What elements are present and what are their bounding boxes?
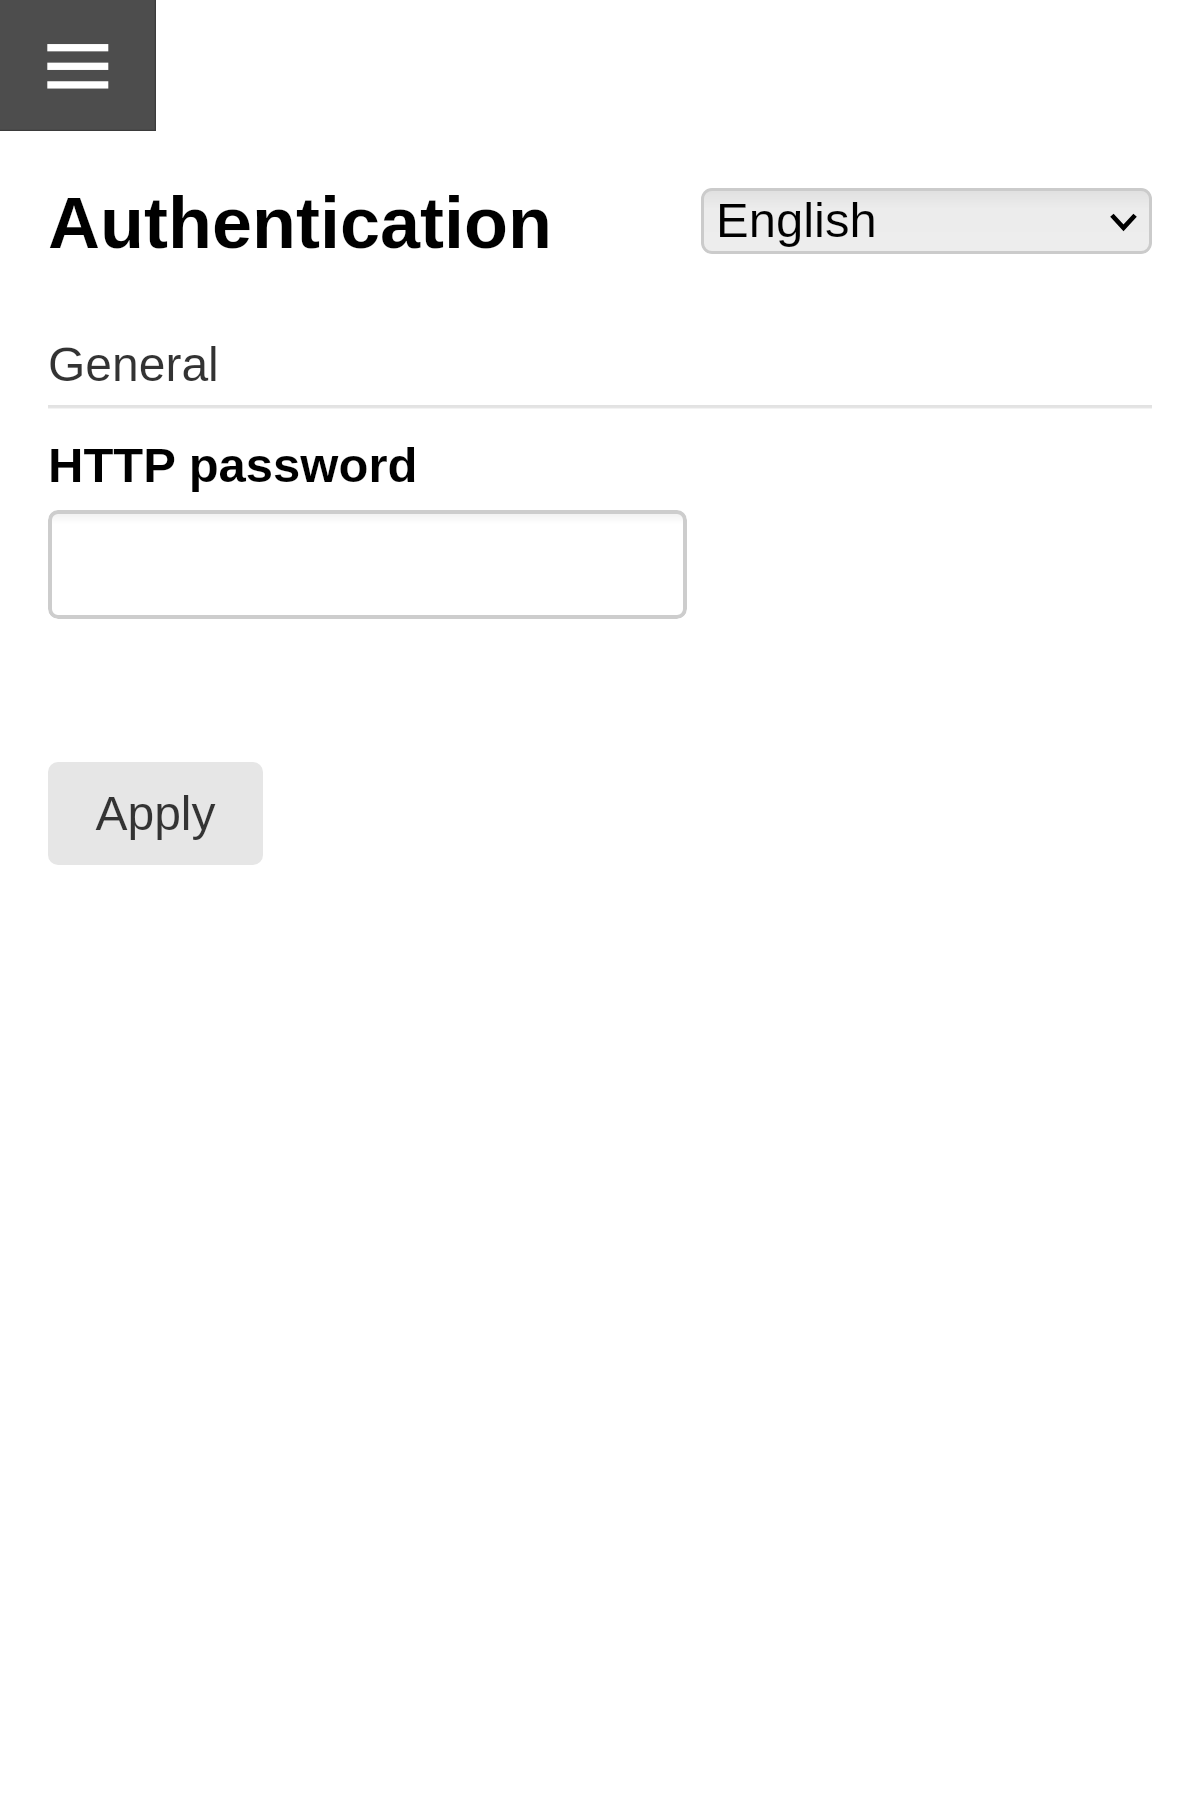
- staticText: Apply: [95, 787, 216, 841]
- button[interactable]: English: [701, 188, 1152, 254]
- staticText: Authentication: [48, 183, 552, 263]
- button[interactable]: Apply: [48, 762, 263, 865]
- staticText: HTTP password: [48, 438, 418, 493]
- button[interactable]: [48, 510, 687, 619]
- staticText: English: [716, 193, 877, 248]
- staticText: General: [48, 338, 219, 392]
- button[interactable]: Menu: [0, 0, 156, 131]
